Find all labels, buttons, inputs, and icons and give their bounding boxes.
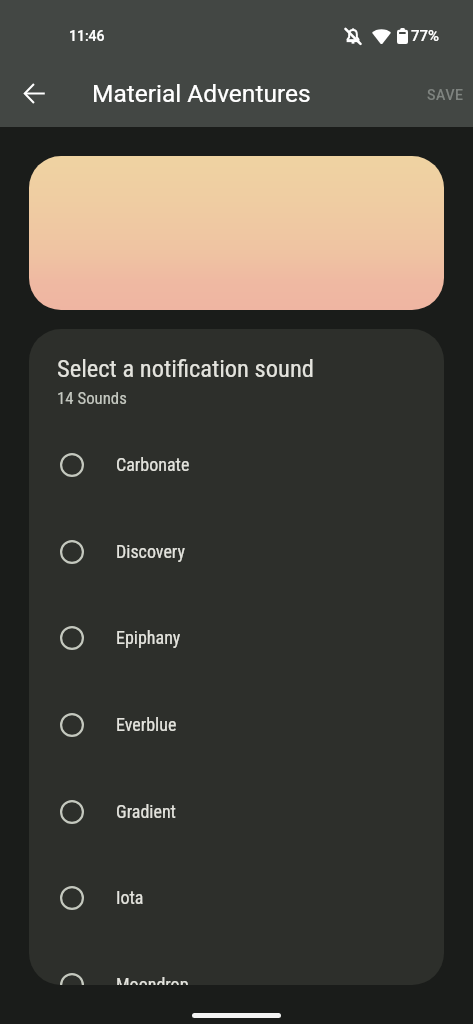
staticText: 14 Sounds	[57, 388, 127, 408]
button[interactable]: Carbonate	[29, 421, 444, 508]
staticText: 77%	[411, 27, 440, 45]
button[interactable]: Discovery	[29, 508, 444, 595]
button[interactable]: Back	[10, 69, 59, 118]
button[interactable]: Everblue	[29, 681, 444, 768]
button[interactable]: SAVE	[411, 77, 473, 113]
button[interactable]: Sound artwork	[29, 156, 444, 310]
staticText: SAVE	[427, 87, 464, 103]
button[interactable]: Gradient	[29, 768, 444, 855]
staticText: 11:46	[69, 28, 105, 44]
staticText: Gradient	[116, 801, 176, 822]
staticText: Discovery	[116, 541, 185, 562]
staticText: Moondrop	[116, 974, 189, 985]
staticText: Everblue	[116, 714, 177, 735]
button[interactable]: Epiphany	[29, 594, 444, 681]
button[interactable]: Iota	[29, 854, 444, 941]
button[interactable]: Moondrop	[29, 941, 444, 985]
staticText: Epiphany	[116, 627, 181, 648]
staticText: Select a notification sound	[57, 354, 314, 383]
staticText: Material Adventures	[92, 79, 311, 108]
staticText: Carbonate	[116, 454, 190, 475]
staticText: Iota	[116, 887, 144, 908]
